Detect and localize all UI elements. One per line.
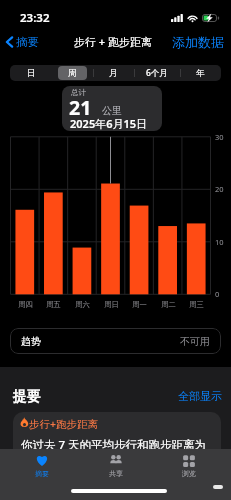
staticText: 全部显示 xyxy=(178,389,222,403)
staticText: 21 xyxy=(69,94,92,121)
staticText: 摘要 xyxy=(16,35,39,49)
button[interactable]: 摘要 xyxy=(10,453,74,478)
button[interactable]: 添加数据 xyxy=(172,34,224,50)
button[interactable]: 共享 xyxy=(84,453,148,478)
button[interactable]: 周 xyxy=(52,65,93,81)
button[interactable]: 月 xyxy=(93,65,134,81)
staticText: 0 xyxy=(215,289,220,299)
staticText: 30 xyxy=(215,132,224,142)
staticText: 总计 xyxy=(71,88,86,97)
staticText: 周日 xyxy=(104,300,119,309)
staticText: 20 xyxy=(215,184,224,194)
staticText: 共享 xyxy=(109,469,123,478)
staticText: 10 xyxy=(215,237,224,247)
staticText: 趋势 xyxy=(21,335,41,348)
button[interactable]: 趋势 xyxy=(10,328,221,354)
staticText: 周四 xyxy=(18,300,33,309)
staticText: 周六 xyxy=(75,300,90,309)
staticText: 添加数据 xyxy=(172,34,224,50)
button[interactable]: 步行+跑步距离 xyxy=(13,412,221,467)
staticText: 周二 xyxy=(161,300,176,309)
staticText: 你过去 7 天的平均步行和跑步距离为 xyxy=(21,437,207,453)
button[interactable]: 日 xyxy=(10,65,52,81)
staticText: 不可用 xyxy=(180,335,210,348)
staticText: 年 xyxy=(196,68,205,79)
staticText: 提要 xyxy=(13,388,40,405)
staticText: 周三 xyxy=(189,300,204,309)
button[interactable]: 年 xyxy=(180,65,221,81)
staticText: 摘要 xyxy=(35,469,49,478)
staticText: 浏览 xyxy=(182,469,196,478)
staticText: 周 xyxy=(68,68,77,79)
button[interactable]: 6个月 xyxy=(134,65,180,81)
staticText: 23:32 xyxy=(20,10,50,26)
staticText: 月 xyxy=(109,68,118,79)
staticText: 周一 xyxy=(132,300,147,309)
button[interactable]: 全部显示 xyxy=(178,389,222,403)
staticText: 2025年6月15日 xyxy=(70,116,148,131)
staticText: 6个月 xyxy=(146,67,168,79)
staticText: 步行 + 跑步距离 xyxy=(74,34,153,49)
button[interactable]: 返回 xyxy=(4,35,39,49)
staticText: 日 xyxy=(27,68,36,79)
staticText: 公里 xyxy=(102,104,122,117)
staticText: 周五 xyxy=(46,300,61,309)
button[interactable]: 浏览 xyxy=(157,453,221,478)
other: 返回 xyxy=(4,35,15,49)
staticText: 步行+跑步距离 xyxy=(29,417,99,431)
